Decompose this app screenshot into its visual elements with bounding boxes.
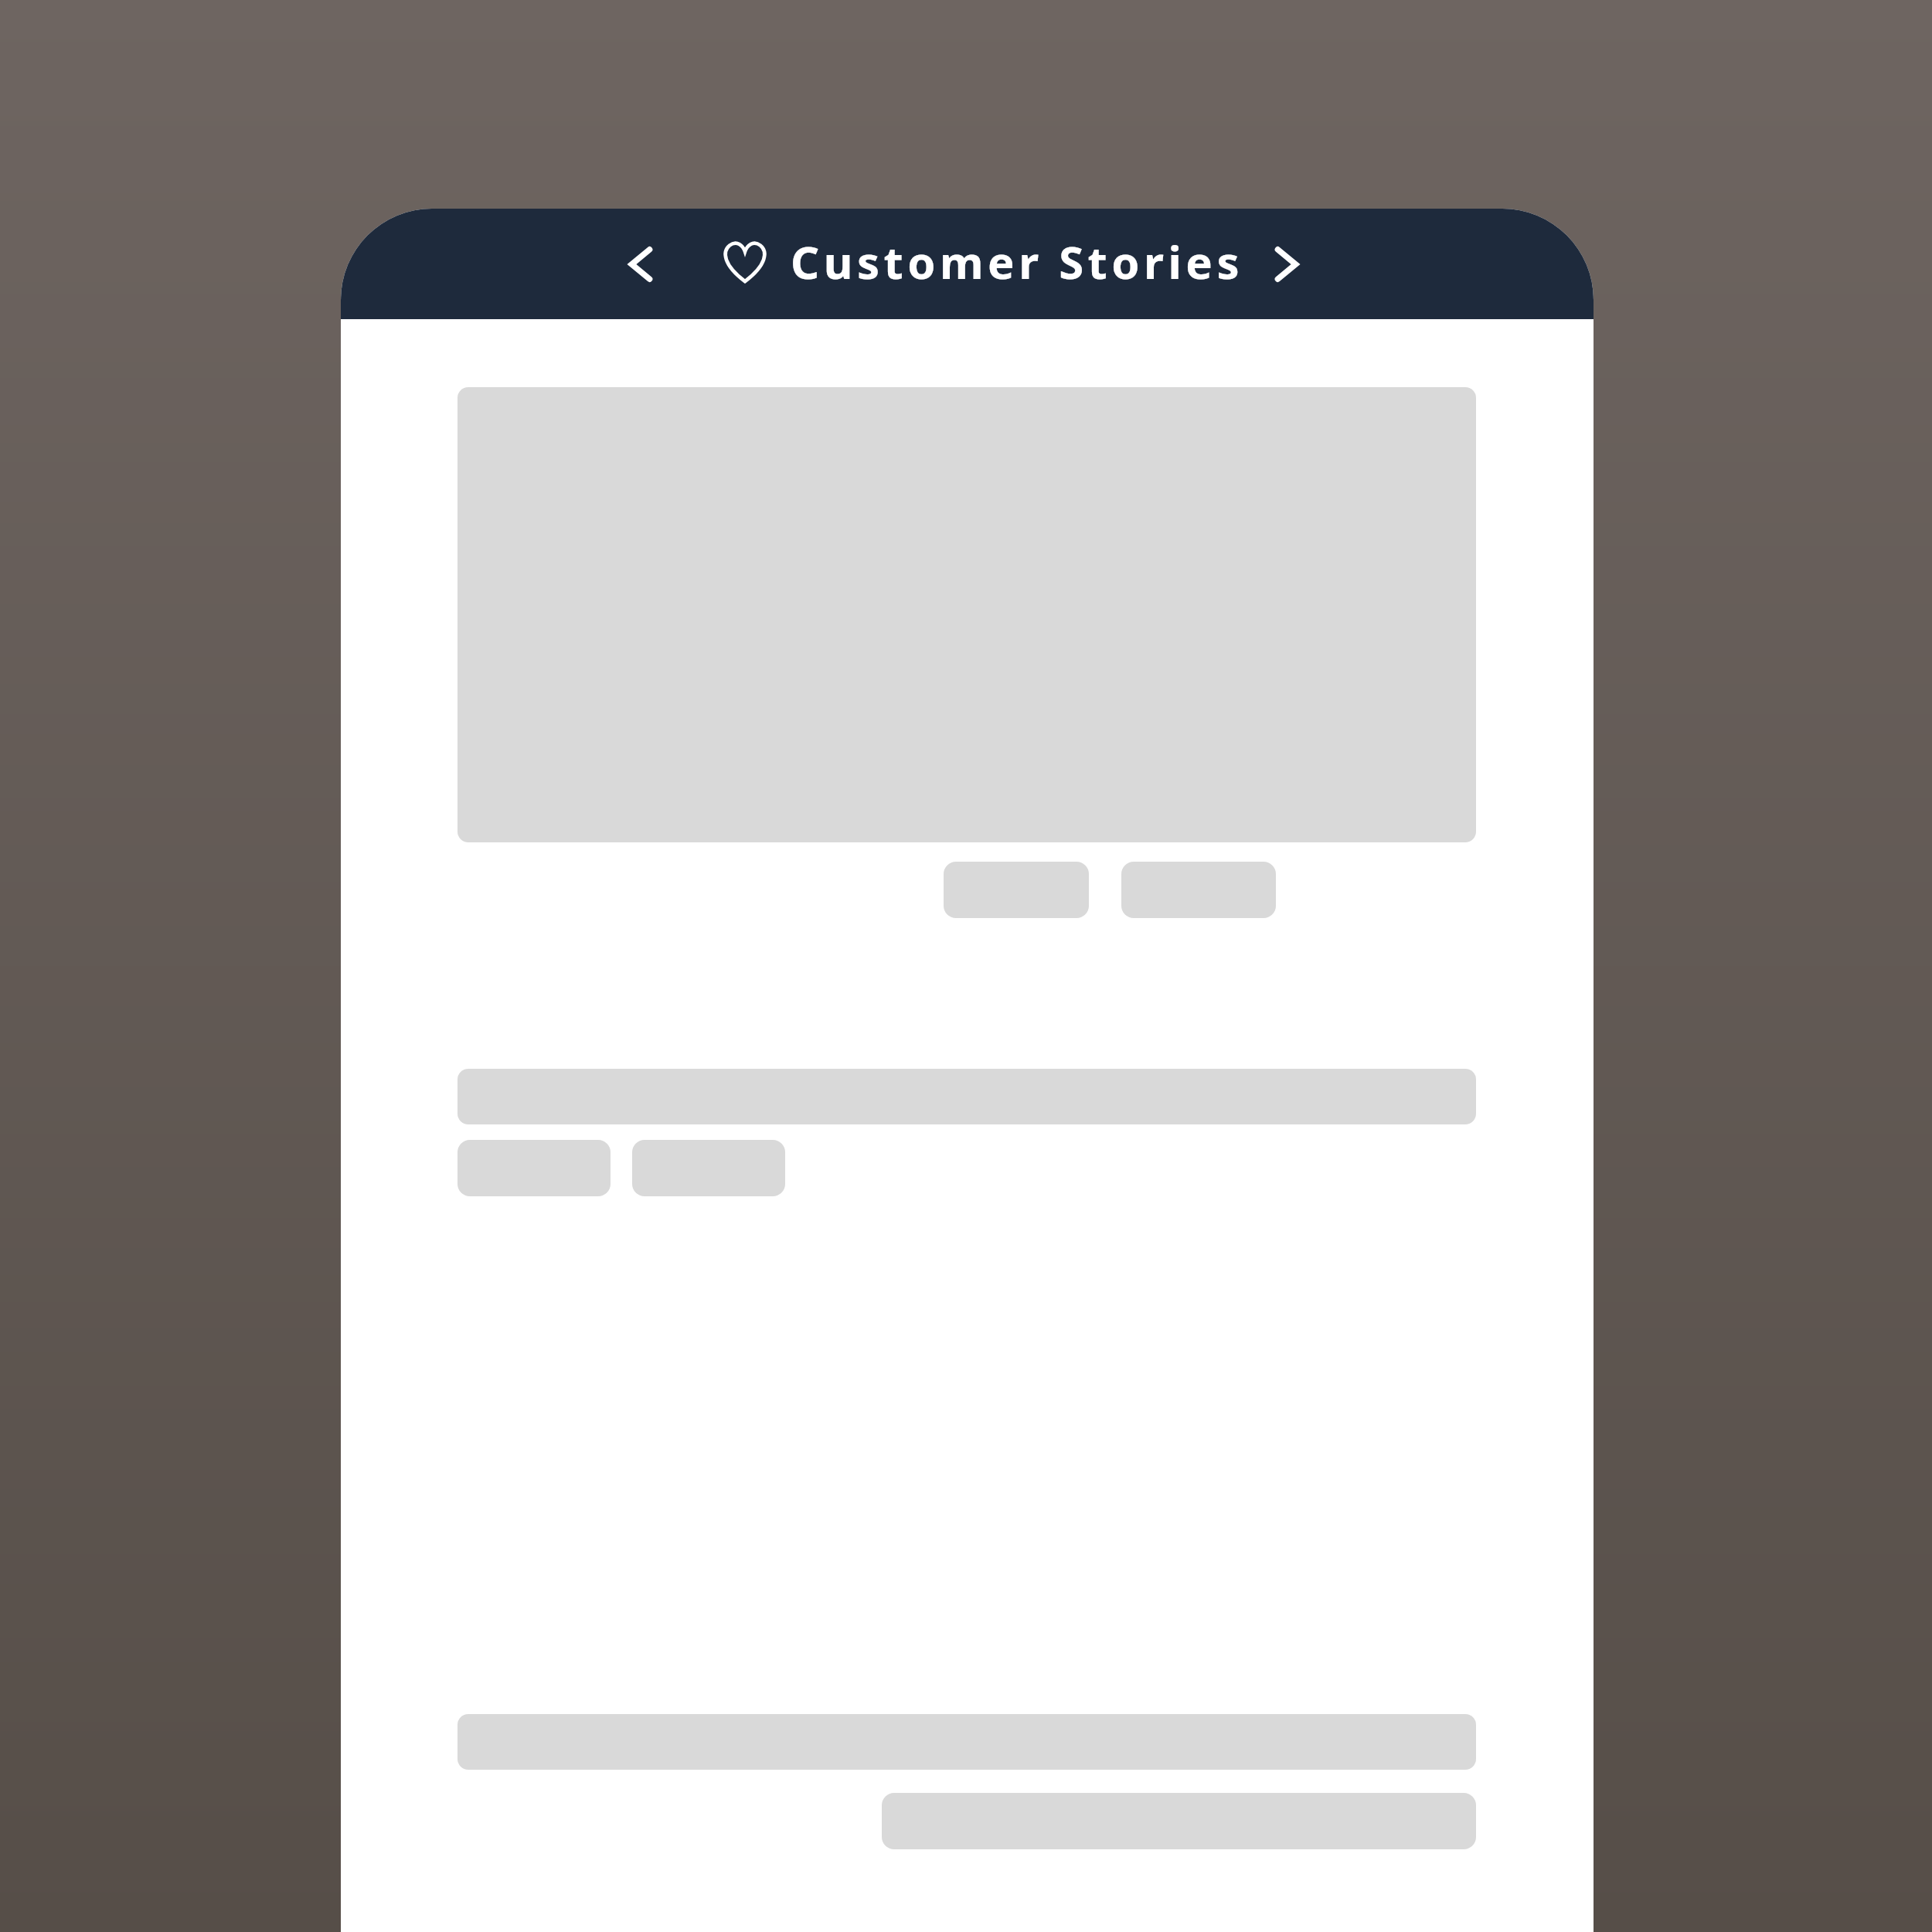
button[interactable] bbox=[457, 1140, 611, 1196]
button[interactable]: Previous story bbox=[604, 227, 678, 301]
button[interactable] bbox=[632, 1140, 785, 1196]
button[interactable] bbox=[944, 862, 1089, 918]
button[interactable]: Next story bbox=[1250, 227, 1324, 301]
button[interactable] bbox=[457, 1714, 1476, 1770]
button[interactable]: Customer Stories bbox=[721, 219, 1244, 304]
staticText: Customer Stories bbox=[791, 231, 1244, 292]
button[interactable] bbox=[1121, 862, 1276, 918]
